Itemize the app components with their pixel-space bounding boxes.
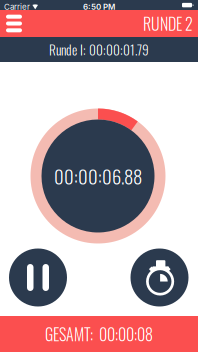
staticText: Runde I: 00:00:01.79 — [49, 40, 149, 59]
button[interactable]: Menu — [0, 10, 32, 37]
staticText: 00:00:06.88 — [54, 162, 142, 190]
staticText: RUNDE 2 — [143, 12, 193, 35]
staticText: Carrier — [4, 2, 30, 12]
button[interactable]: Pause — [9, 248, 67, 306]
button[interactable]: Lap — [130, 248, 188, 306]
staticText: 6:50 PM — [83, 2, 115, 12]
staticText: GESAMT: 00:00:08 — [45, 322, 153, 346]
